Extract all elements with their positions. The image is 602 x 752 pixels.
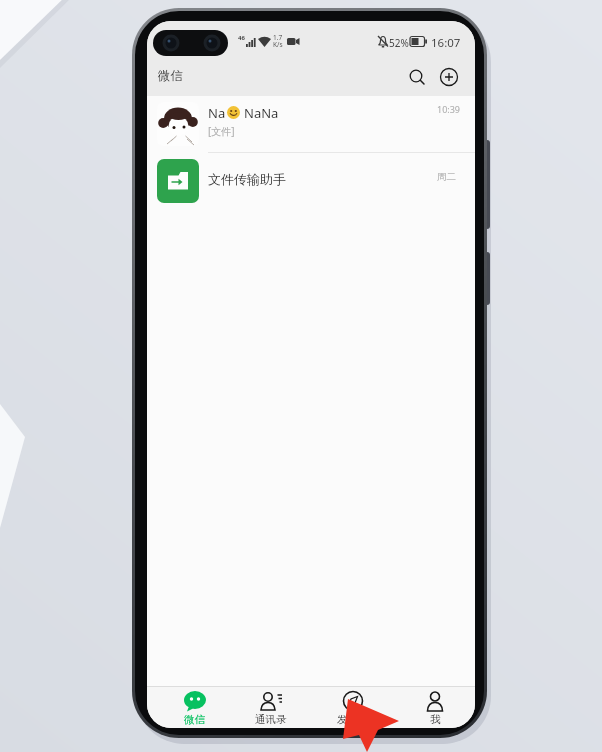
button[interactable]: 发现 — [311, 686, 393, 728]
staticText: 发现 — [337, 713, 358, 726]
staticText: 我 — [430, 713, 441, 726]
button[interactable]: 我 — [393, 686, 475, 728]
staticText: NaNa — [244, 104, 279, 121]
staticText: 52% — [389, 36, 409, 50]
staticText: K/s — [273, 40, 283, 49]
staticText: 通讯录 — [255, 713, 287, 726]
staticText: 16:07 — [431, 35, 461, 51]
staticText: 微信 — [184, 713, 205, 726]
staticText: 1.7 — [273, 33, 283, 42]
staticText: [文件] — [208, 124, 235, 138]
staticText: 微信 — [158, 68, 183, 84]
button[interactable]: 微信 — [147, 686, 229, 728]
staticText: 文件传输助手 — [208, 171, 286, 187]
button[interactable] — [435, 63, 463, 91]
staticText: Na — [208, 104, 226, 121]
staticText: 周二 — [437, 171, 456, 183]
staticText: 46 — [238, 34, 245, 42]
staticText: 10:39 — [437, 103, 461, 115]
button[interactable] — [403, 63, 431, 91]
button[interactable]: Na — [147, 96, 475, 153]
button[interactable]: 通讯录 — [229, 686, 311, 728]
button[interactable]: 文件传输助手 — [147, 153, 475, 210]
